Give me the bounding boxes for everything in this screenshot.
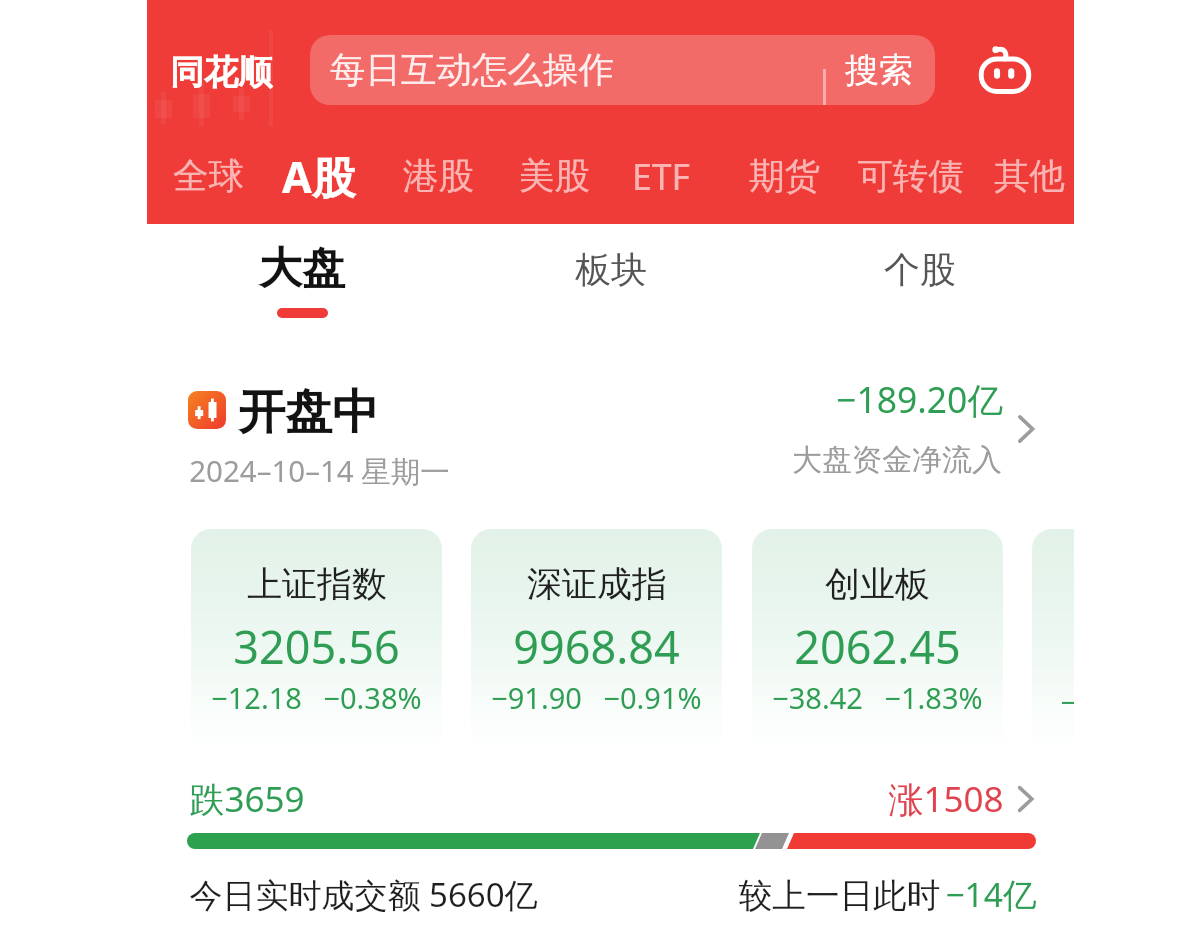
- button[interactable]: A股: [273, 141, 364, 211]
- button[interactable]: 搜索: [837, 35, 921, 105]
- staticText: 港股: [403, 154, 474, 199]
- button[interactable]: 创业板: [752, 529, 1003, 757]
- staticText: −9.42: [1060, 682, 1074, 721]
- button[interactable]: 大盘: [147, 224, 456, 314]
- staticText: 美股: [519, 154, 590, 199]
- staticText: 2024–10–14 星期一: [189, 450, 450, 490]
- staticText: 跌3659: [189, 775, 305, 823]
- button[interactable]: 北证50: [1032, 529, 1074, 757]
- staticText: 其他: [994, 154, 1065, 199]
- staticText: 全球: [173, 154, 244, 199]
- staticText: ETF: [632, 152, 690, 200]
- staticText: 同花顺: [170, 51, 272, 94]
- staticText: 9968.84: [513, 616, 680, 677]
- staticText: 深证成指: [527, 562, 667, 606]
- button[interactable]: 板块: [456, 224, 765, 314]
- staticText: −38.42: [772, 678, 863, 717]
- staticText: A股: [282, 147, 355, 206]
- button[interactable]: 上证指数: [191, 529, 442, 757]
- button[interactable]: 深证成指: [471, 529, 722, 757]
- button[interactable]: 每日互动怎么操作: [310, 35, 935, 105]
- button[interactable]: 可转债: [848, 141, 973, 211]
- staticText: −1.83%: [884, 678, 983, 717]
- staticText: 每日互动怎么操作: [330, 48, 614, 93]
- button[interactable]: −189.20亿: [780, 370, 1042, 488]
- staticText: 大盘资金净流入: [792, 441, 1002, 479]
- staticText: 期货: [749, 154, 820, 199]
- staticText: 较上一日此时: [734, 871, 945, 917]
- button[interactable]: 同花顺 首页: [170, 48, 272, 97]
- button[interactable]: 美股: [510, 141, 599, 211]
- button[interactable]: 个股: [765, 224, 1074, 314]
- staticText: −14亿: [945, 871, 1037, 917]
- staticText: 可转债: [857, 154, 964, 199]
- staticText: −91.90: [491, 678, 582, 717]
- staticText: 3205.56: [233, 616, 400, 677]
- button[interactable]: AI 智能助手: [975, 40, 1035, 100]
- staticText: 今日实时成交额 5660亿: [189, 872, 538, 917]
- staticText: 涨1508: [888, 775, 1004, 823]
- staticText: −12.18: [211, 678, 302, 717]
- button[interactable]: ETF: [623, 141, 699, 211]
- staticText: 2062.45: [794, 616, 961, 677]
- button[interactable]: 跌3659: [189, 775, 1036, 823]
- staticText: 搜索: [845, 49, 913, 92]
- button[interactable]: 其他: [985, 141, 1074, 211]
- staticText: 大盘: [259, 242, 345, 296]
- staticText: 创业板: [825, 562, 930, 606]
- staticText: 开盘中: [238, 383, 379, 442]
- staticText: −0.38%: [323, 678, 422, 717]
- button[interactable]: 期货: [740, 141, 829, 211]
- button[interactable]: 全球: [164, 141, 253, 211]
- staticText: 板块: [575, 247, 647, 292]
- button[interactable]: 港股: [394, 141, 483, 211]
- staticText: −189.20亿: [836, 375, 1003, 423]
- staticText: 上证指数: [247, 562, 387, 606]
- staticText: −0.91%: [603, 678, 702, 717]
- staticText: 个股: [884, 247, 956, 292]
